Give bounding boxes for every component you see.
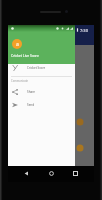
staticText: a [16, 41, 19, 48]
button[interactable]: Send [8, 98, 75, 111]
staticText: Cricket Score [27, 66, 46, 70]
button[interactable]: Back [22, 169, 30, 177]
button[interactable]: Cricket Score [8, 61, 75, 74]
staticText: Communicate [11, 79, 29, 83]
staticText: Share [27, 90, 36, 94]
staticText: 7:30 [80, 28, 88, 33]
staticText: Send [27, 103, 35, 107]
button[interactable]: Home [47, 169, 55, 177]
staticText: Cricket Live Score [11, 53, 39, 58]
button[interactable]: Recents [71, 169, 79, 177]
button[interactable]: Share [8, 85, 75, 98]
